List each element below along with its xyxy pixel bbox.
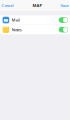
button[interactable]: Notes on — [59, 27, 68, 32]
staticText: MAP — [32, 3, 41, 8]
button[interactable]: Mail on — [59, 17, 68, 23]
staticText: Notes — [12, 27, 22, 32]
button[interactable]: Save — [59, 1, 69, 10]
staticText: Save — [60, 3, 68, 8]
staticText: Cancel — [2, 3, 14, 8]
staticText: Mail — [12, 17, 20, 23]
button[interactable]: Cancel — [1, 1, 15, 10]
